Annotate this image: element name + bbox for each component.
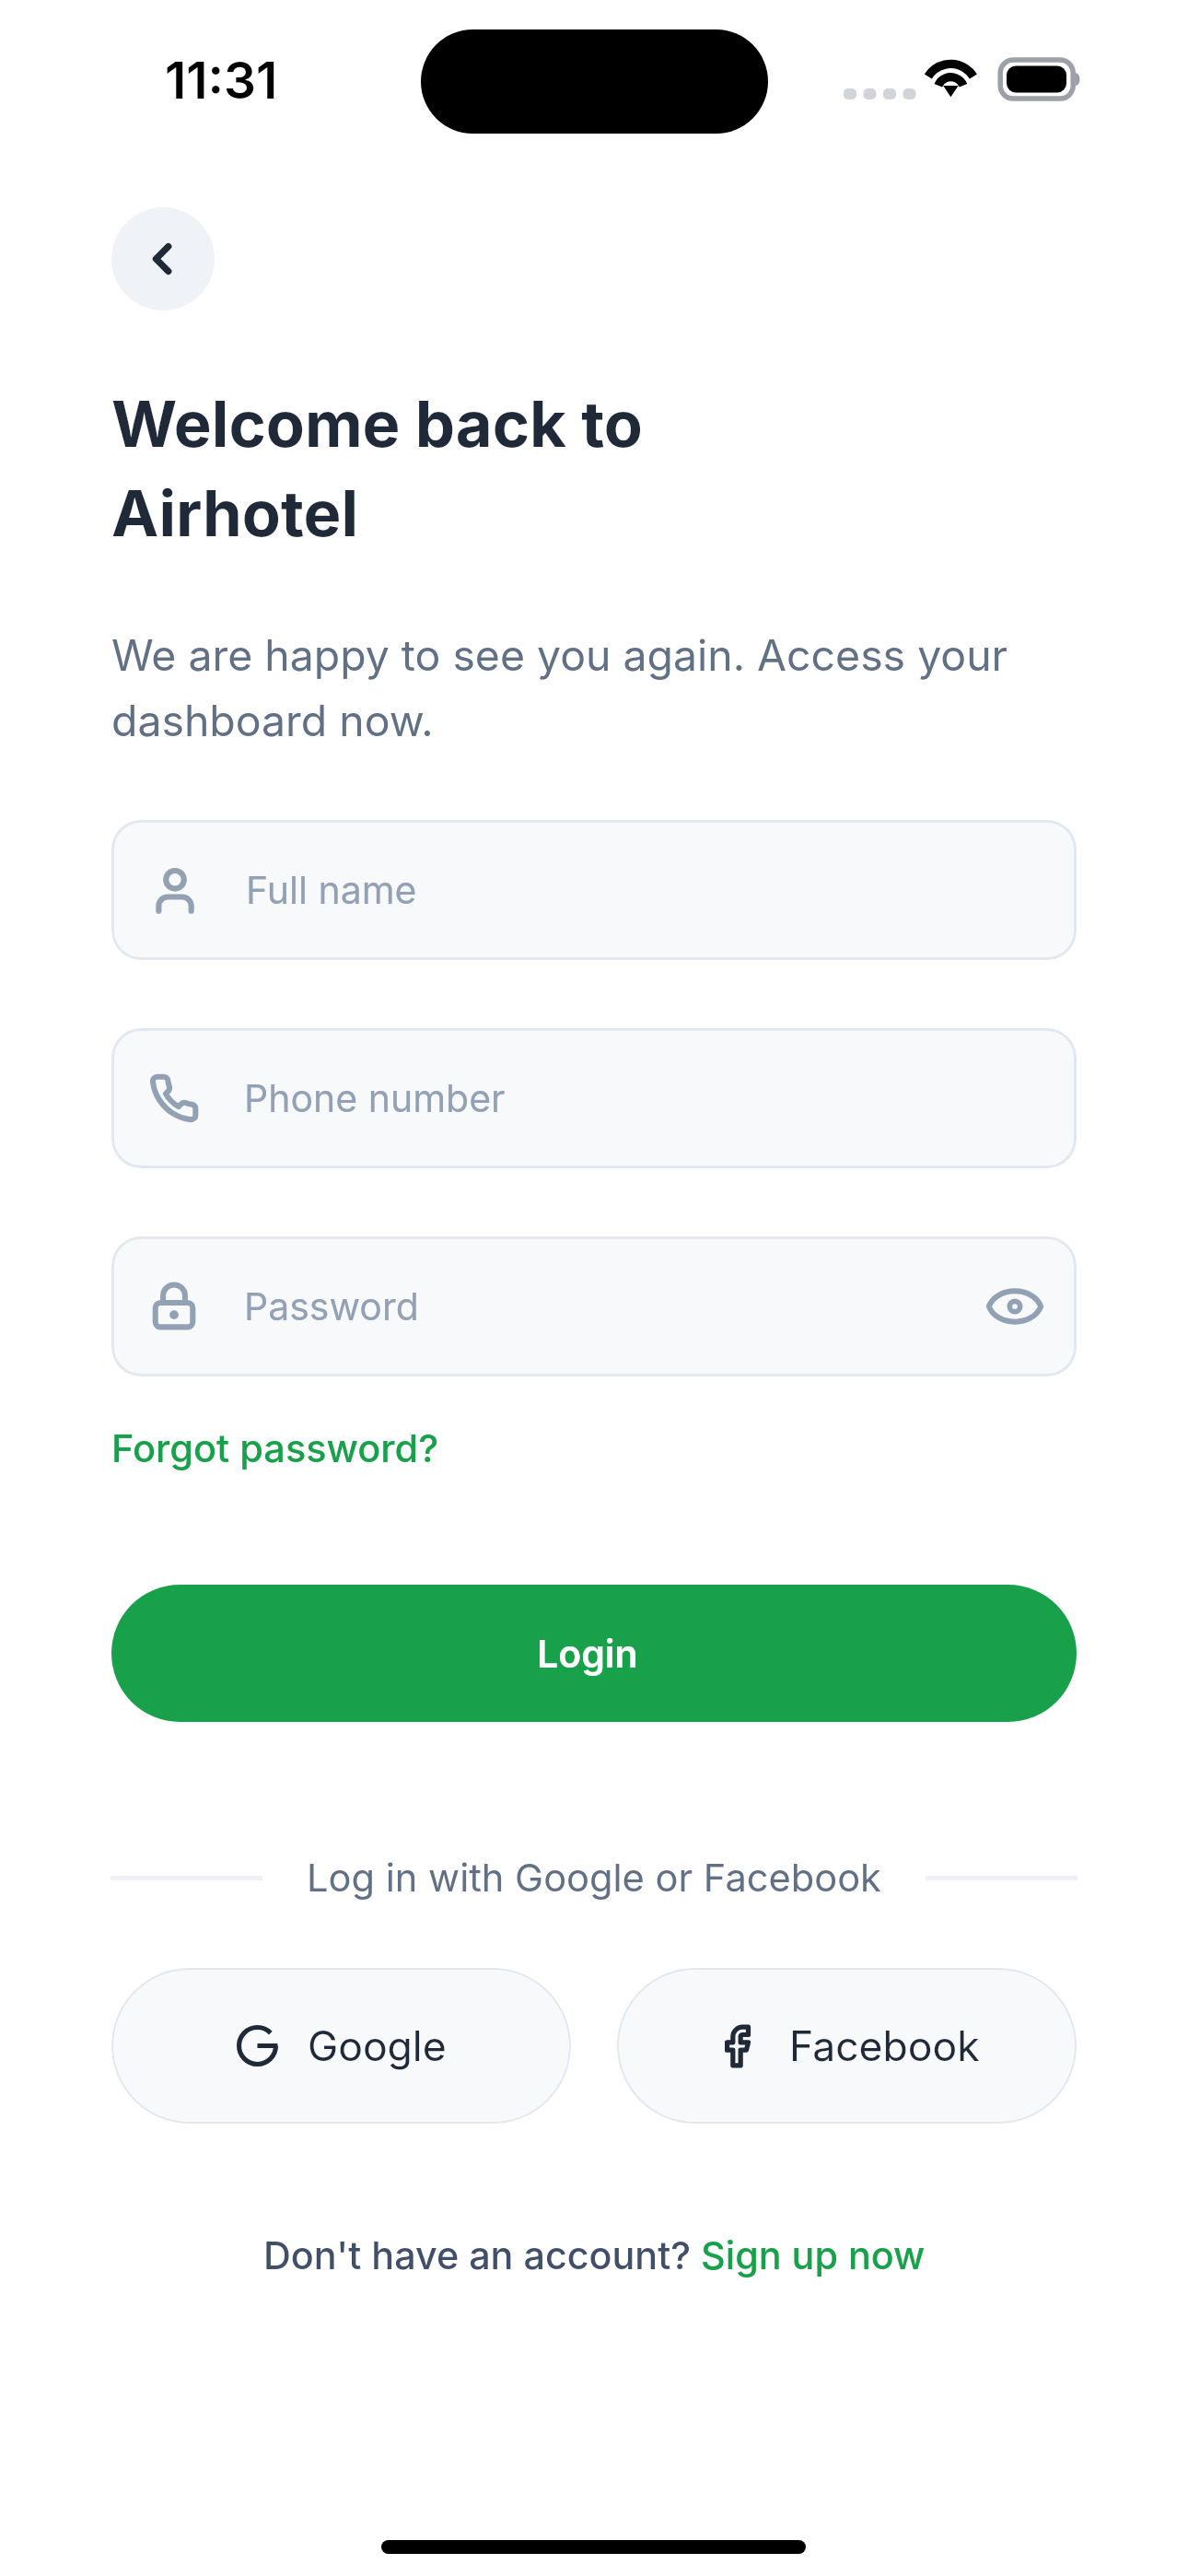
staticText: 11:31 [165, 50, 278, 111]
staticText: Full name [246, 867, 417, 913]
staticText: Phone number [244, 1075, 506, 1121]
staticText: We are happy to see you again. Access yo… [111, 629, 1077, 746]
button[interactable]: Password [111, 1236, 1077, 1376]
button[interactable]: Phone number [111, 1028, 1077, 1168]
staticText: Password [244, 1283, 419, 1329]
staticText: Login [537, 1631, 638, 1677]
staticText: Welcome back to Airhotel [111, 385, 643, 551]
button[interactable]: Forgot password? [111, 1425, 439, 1471]
staticText: Google [308, 2021, 447, 2071]
staticText: Forgot password? [111, 1425, 439, 1471]
button[interactable]: Facebook [617, 1968, 1077, 2124]
button[interactable]: Back [111, 207, 215, 310]
button[interactable]: Google [111, 1968, 571, 2124]
button[interactable]: Full name [111, 820, 1077, 960]
button[interactable]: Show password [984, 1276, 1045, 1337]
button[interactable]: Don't have an account? Sign up now [263, 2232, 926, 2278]
staticText: Log in with Google or Facebook [111, 1855, 1077, 1901]
staticText: Don't have an account? Sign up now [263, 2232, 926, 2278]
button[interactable]: Login [111, 1585, 1077, 1722]
staticText: Facebook [789, 2021, 980, 2071]
